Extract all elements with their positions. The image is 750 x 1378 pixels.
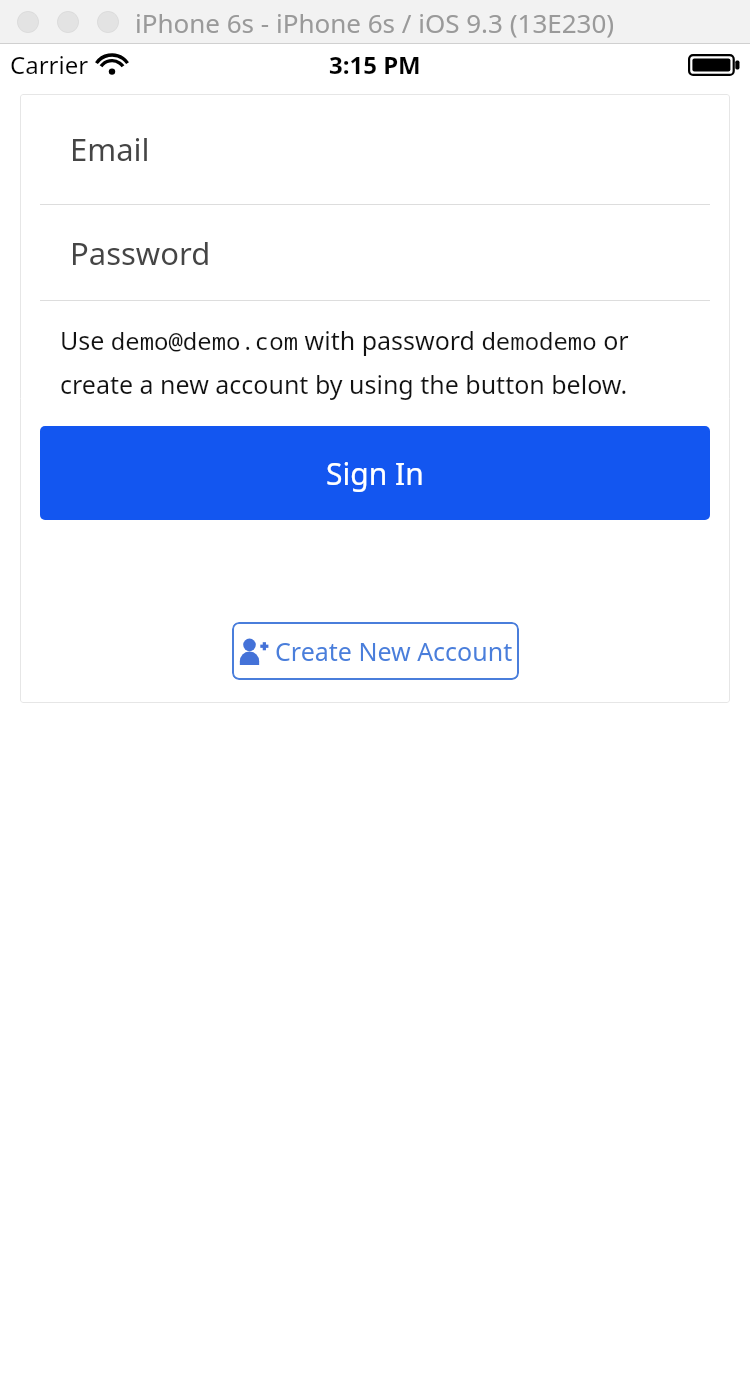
staticText: Password bbox=[70, 232, 211, 274]
staticText: Sign In bbox=[326, 453, 424, 494]
staticText: 3:15 PM bbox=[329, 48, 421, 81]
button[interactable]: Create New Account bbox=[232, 622, 519, 680]
button[interactable]: Password bbox=[20, 205, 730, 300]
staticText: iPhone 6s - iPhone 6s / iOS 9.3 (13E230) bbox=[135, 5, 615, 40]
staticText: Use demo@demo.com with password demodemo… bbox=[60, 323, 702, 401]
staticText: Create New Account bbox=[275, 634, 513, 668]
staticText: Carrier bbox=[10, 48, 89, 81]
button[interactable]: Sign In bbox=[40, 426, 710, 520]
staticText: Email bbox=[70, 128, 150, 170]
button[interactable]: Email bbox=[20, 94, 730, 204]
